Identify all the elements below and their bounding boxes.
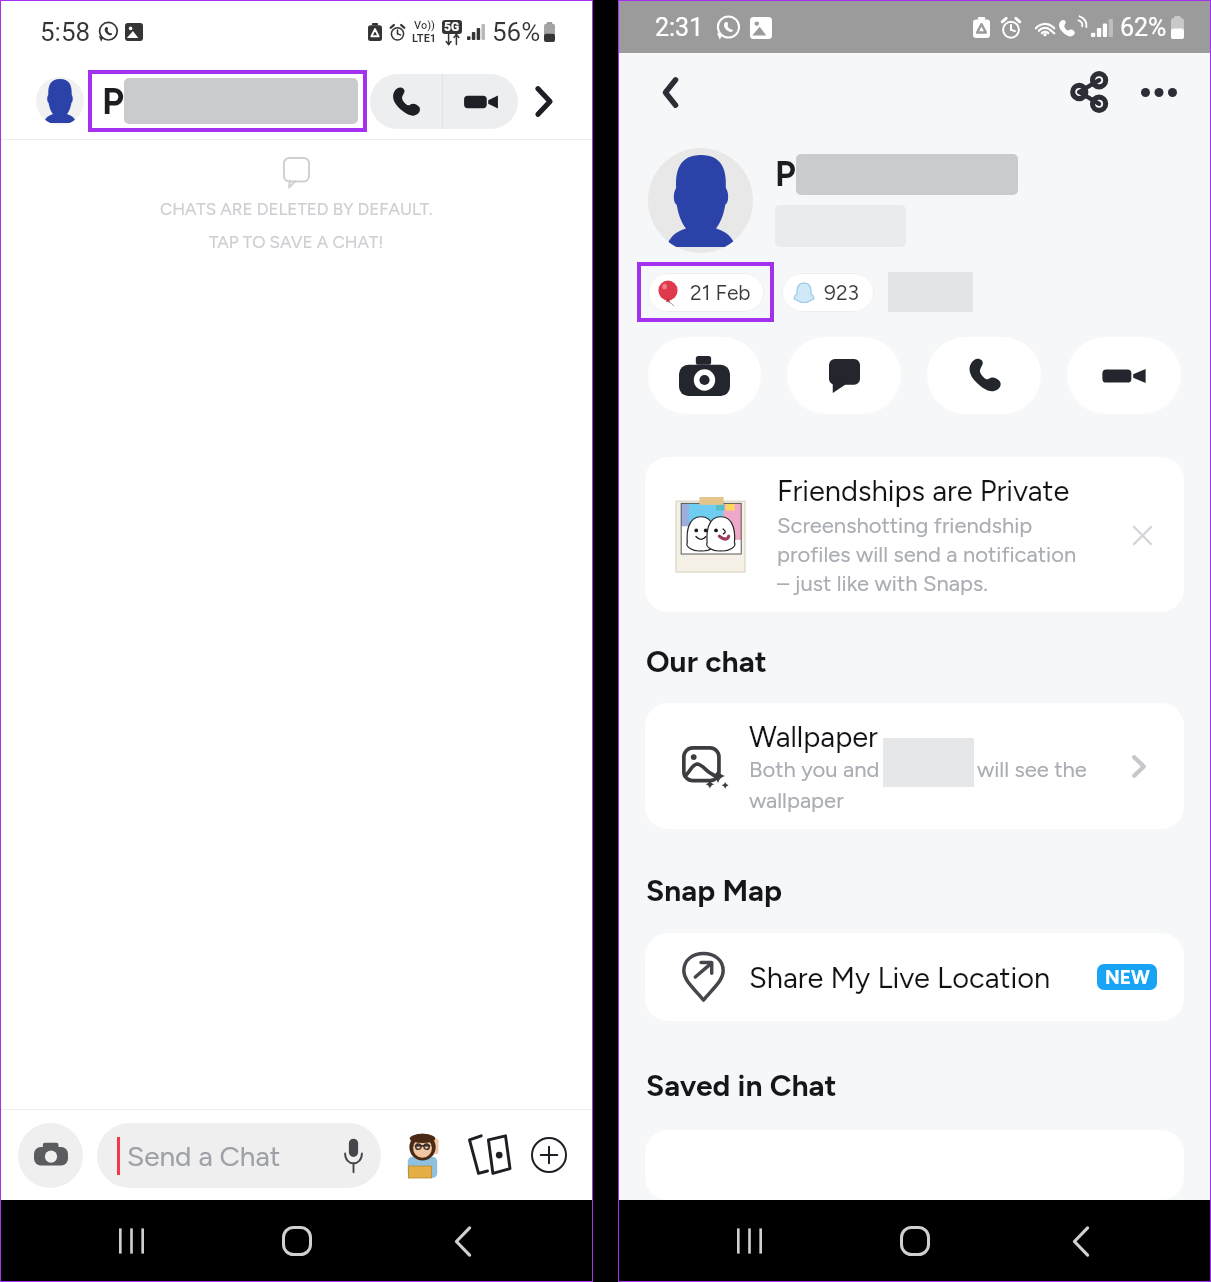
button[interactable]: Voice call xyxy=(370,74,442,129)
button[interactable]: Home xyxy=(886,1212,944,1270)
staticText: LTE1 xyxy=(412,32,437,45)
staticText: 62% xyxy=(1120,13,1167,42)
staticText: Both you and xyxy=(749,756,880,782)
staticText: Vo)) xyxy=(414,19,435,32)
staticText: P xyxy=(775,154,796,195)
button[interactable]: Video call xyxy=(1067,337,1181,414)
button[interactable]: Bitmoji xyxy=(399,1132,445,1178)
button[interactable]: P xyxy=(88,70,367,132)
button[interactable]: More xyxy=(529,1135,569,1175)
staticText: 923 xyxy=(824,280,860,305)
button[interactable]: Chat xyxy=(787,337,901,414)
button[interactable]: Back xyxy=(641,63,699,121)
button[interactable]: Camera xyxy=(18,1123,83,1188)
button[interactable]: Recents xyxy=(720,1212,778,1270)
button[interactable]: Send a Chat xyxy=(97,1123,381,1188)
staticText: 56% xyxy=(492,17,541,47)
staticText: Wallpaper xyxy=(749,719,878,754)
staticText: P xyxy=(102,80,124,123)
button[interactable]: 923 xyxy=(782,273,874,312)
staticText: wallpaper xyxy=(749,787,844,813)
button[interactable]: Back xyxy=(1052,1212,1110,1270)
button[interactable]: Share My Live Location xyxy=(645,933,1184,1021)
staticText: 5G xyxy=(444,20,460,34)
staticText: NEW xyxy=(1105,966,1150,989)
staticText: Friendships are Private xyxy=(777,473,1070,508)
staticText: 2:31 xyxy=(655,13,704,42)
button[interactable]: Friendships are Private xyxy=(645,457,1184,612)
staticText: 21 Feb xyxy=(690,280,751,305)
button[interactable]: Dismiss xyxy=(1125,518,1159,552)
staticText: TAP TO SAVE A CHAT! xyxy=(209,232,384,252)
button[interactable]: Stickers xyxy=(463,1131,511,1179)
staticText: Saved in Chat xyxy=(646,1067,837,1103)
staticText: Snap Map xyxy=(646,872,783,908)
staticText: Screenshotting friendship profiles will … xyxy=(777,512,1077,596)
button[interactable]: Share xyxy=(1060,63,1118,121)
staticText: Our chat xyxy=(646,643,767,679)
button[interactable]: Forward xyxy=(522,79,566,123)
button[interactable]: Call xyxy=(927,337,1041,414)
staticText: 5:58 xyxy=(40,17,91,47)
button[interactable]: Wallpaper xyxy=(645,703,1184,829)
staticText: will see the xyxy=(977,756,1087,782)
staticText: Share My Live Location xyxy=(749,960,1051,995)
button[interactable]: 21 Feb xyxy=(648,273,764,312)
button[interactable]: Back xyxy=(434,1212,492,1270)
button[interactable]: Camera xyxy=(648,337,761,414)
button[interactable]: Video call xyxy=(443,74,518,129)
staticText: Send a Chat xyxy=(127,1139,281,1173)
button[interactable]: Home xyxy=(268,1212,326,1270)
button[interactable]: Recents xyxy=(102,1212,160,1270)
button[interactable]: More options xyxy=(1130,63,1188,121)
staticText: CHATS ARE DELETED BY DEFAULT. xyxy=(160,199,433,219)
